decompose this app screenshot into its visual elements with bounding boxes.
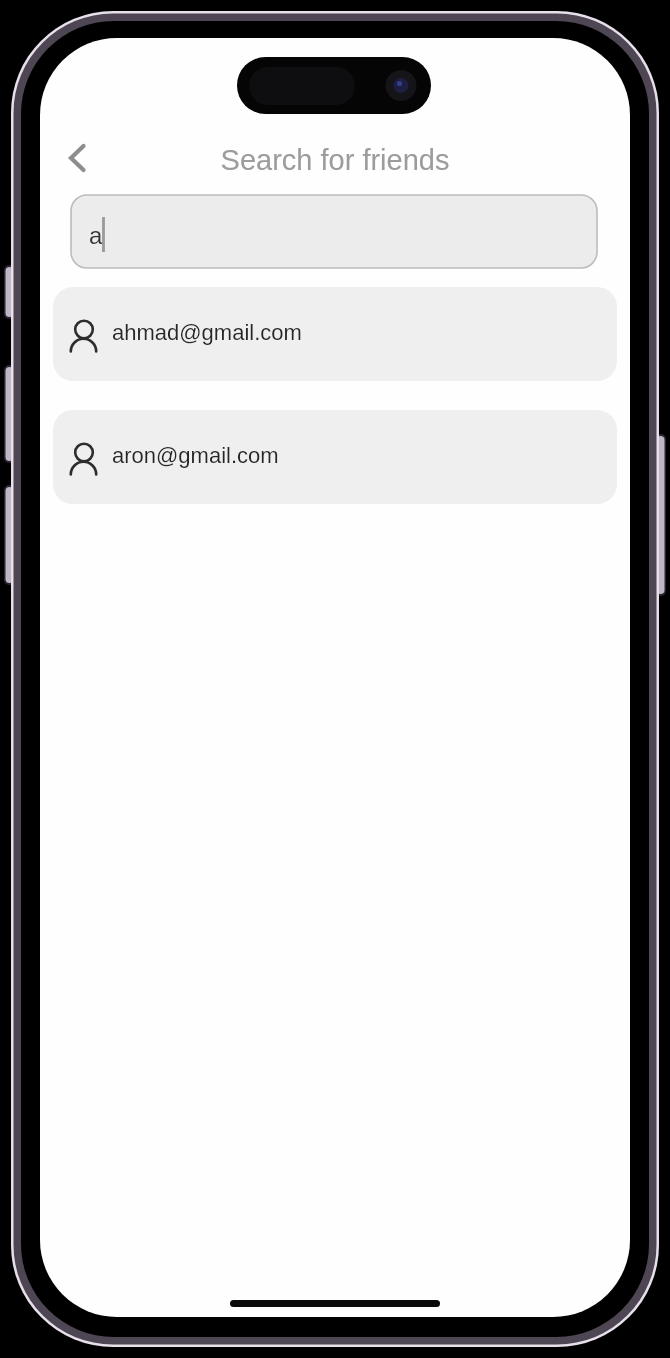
staticText: a	[89, 222, 103, 249]
button[interactable]: aron@gmail.com	[53, 410, 617, 504]
button[interactable]	[71, 195, 597, 268]
button[interactable]	[60, 135, 104, 179]
staticText: aron@gmail.com	[112, 443, 279, 468]
staticText: ahmad@gmail.com	[112, 320, 302, 345]
staticText: Search for friends	[0, 144, 670, 176]
button[interactable]: ahmad@gmail.com	[53, 287, 617, 381]
